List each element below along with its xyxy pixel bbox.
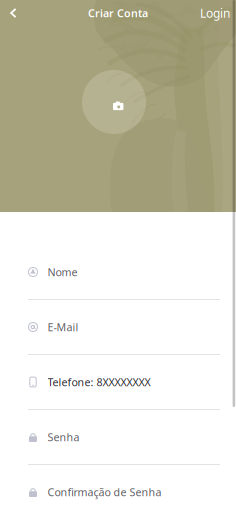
button[interactable]: Nome xyxy=(0,245,236,300)
button[interactable]: Adicionar foto xyxy=(82,70,146,134)
button[interactable]: E-Mail xyxy=(0,300,236,355)
button[interactable]: Telefone: 8XXXXXXXX xyxy=(0,355,236,410)
button[interactable]: Confirmação de Senha xyxy=(0,465,236,512)
staticText: Senha xyxy=(47,430,79,444)
staticText: Criar Conta xyxy=(88,6,148,20)
button[interactable]: Senha xyxy=(0,410,236,465)
staticText: E-Mail xyxy=(47,320,78,334)
staticText: Confirmação de Senha xyxy=(47,485,161,499)
staticText: Nome xyxy=(47,265,77,279)
button[interactable]: Voltar xyxy=(5,1,22,25)
staticText: Telefone: 8XXXXXXXX xyxy=(47,375,150,389)
staticText: Login xyxy=(200,5,230,21)
button[interactable]: Login xyxy=(196,0,234,26)
